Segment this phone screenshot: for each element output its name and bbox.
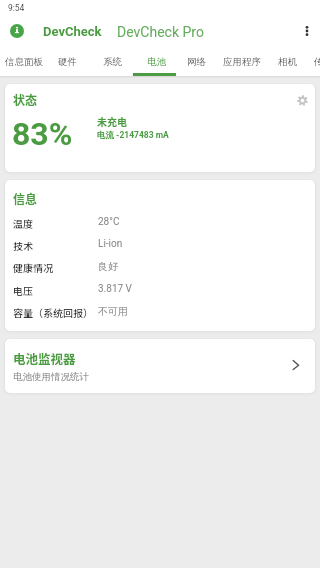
- staticText: 技术: [13, 238, 33, 252]
- staticText: 电池监视器: [13, 349, 76, 367]
- staticText: 状态: [13, 91, 38, 108]
- staticText: Li-ion: [98, 238, 123, 250]
- staticText: 相机: [278, 56, 297, 68]
- staticText: 应用程序: [223, 56, 261, 68]
- staticText: 电池使用情况统计: [13, 371, 89, 383]
- staticText: 容量（系统回报）: [13, 305, 93, 319]
- button[interactable]: 信息面板: [0, 48, 51, 76]
- staticText: 传: [314, 56, 320, 68]
- button[interactable]: Settings: [291, 89, 313, 111]
- staticText: 健康情况: [13, 260, 53, 274]
- staticText: 信息面板: [5, 56, 43, 68]
- staticText: 83%: [12, 115, 73, 153]
- button[interactable]: More options: [295, 19, 319, 43]
- staticText: 网络: [187, 56, 206, 68]
- button[interactable]: 硬件: [49, 48, 85, 76]
- button[interactable]: 电池: [138, 48, 174, 76]
- staticText: DevCheck Pro: [117, 24, 204, 40]
- staticText: 硬件: [58, 56, 77, 68]
- staticText: 温度: [13, 216, 33, 230]
- button[interactable]: 相机: [268, 48, 307, 76]
- button[interactable]: 网络: [177, 48, 216, 76]
- button[interactable]: 应用程序: [214, 48, 270, 76]
- staticText: DevCheck: [43, 24, 102, 39]
- button[interactable]: 系统: [94, 48, 130, 76]
- staticText: 电压: [13, 283, 33, 297]
- staticText: 电池: [147, 56, 166, 68]
- staticText: 电流 -2147483 mA: [97, 130, 169, 141]
- staticText: 未充电: [97, 114, 127, 128]
- staticText: 9:54: [8, 3, 25, 13]
- button[interactable]: 传: [305, 48, 320, 76]
- staticText: 良好: [98, 260, 118, 273]
- staticText: 3.817 V: [98, 283, 132, 295]
- staticText: 28°C: [98, 216, 120, 228]
- staticText: 不可用: [98, 305, 128, 318]
- button[interactable]: 电池监视器: [5, 339, 315, 393]
- staticText: 信息: [13, 190, 38, 207]
- staticText: 系统: [103, 56, 122, 68]
